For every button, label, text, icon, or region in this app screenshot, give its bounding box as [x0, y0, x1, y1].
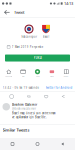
- staticText: YÜKLE: [33, 56, 41, 60]
- staticText: Basel maçı öncesi son antrenman: [12, 111, 56, 115]
- button[interactable]: Back: [50, 142, 75, 146]
- staticText: Tweet: [14, 10, 25, 15]
- staticText: Canlı: [36, 75, 39, 77]
- staticText: Anasayfa: [5, 75, 12, 77]
- staticText: 14:13: [64, 1, 73, 6]
- button[interactable]: YÜKLE: [5, 54, 70, 61]
- button[interactable]: Home: [25, 142, 50, 146]
- staticText: Similar Tweets: [2, 127, 29, 133]
- button[interactable]: Recent apps: [0, 142, 25, 145]
- button[interactable]: Reply: [3, 94, 20, 99]
- button[interactable]: Haber: [59, 69, 73, 82]
- staticText: 7 Mart 2019 Perşembe: [12, 45, 44, 49]
- button[interactable]: Twitter for Android: [45, 86, 72, 89]
- button[interactable]: Back: [3, 8, 11, 16]
- button[interactable]: Anasayfa: [1, 69, 16, 82]
- button[interactable]: Canlı: [30, 69, 45, 82]
- staticText: Liste: [22, 75, 25, 77]
- staticText: İbrahim Özdemir: [12, 103, 37, 106]
- staticText: @ibrahimozdemirr: [12, 107, 36, 110]
- button[interactable]: Share: [55, 94, 72, 99]
- button[interactable]: Video: [45, 69, 59, 82]
- staticText: Twitter for Android: [45, 86, 72, 89]
- button[interactable]: Retweet: [20, 94, 37, 99]
- staticText: Trabzonspor: [21, 35, 37, 38]
- staticText: Haber: [64, 75, 69, 77]
- staticText: ve açıklamalar için Basel'de.: [12, 115, 47, 119]
- staticText: Basel: [42, 35, 49, 38]
- button[interactable]: Liste: [16, 69, 30, 82]
- staticText: Video: [50, 75, 54, 77]
- staticText: 13:42 · 06 Eki 19 saatinde: [2, 86, 39, 89]
- button[interactable]: Like: [37, 94, 55, 99]
